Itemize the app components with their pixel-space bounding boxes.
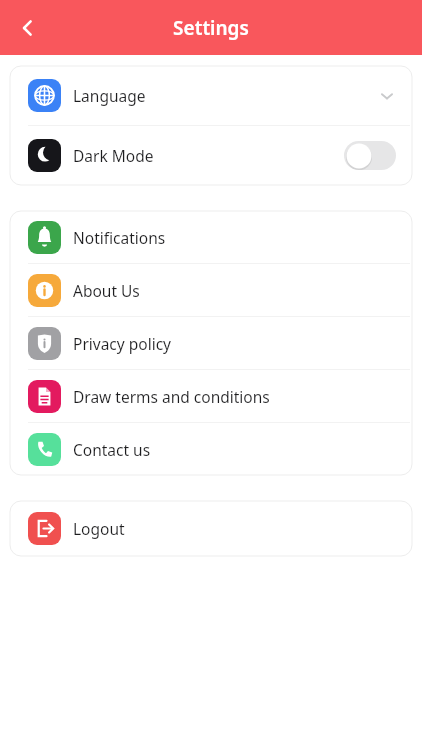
staticText: Logout (73, 518, 125, 539)
staticText: Settings (173, 15, 249, 41)
button[interactable]: Dark Mode, off (344, 141, 396, 170)
staticText: About Us (73, 280, 140, 301)
button[interactable]: Dark Mode (10, 126, 412, 185)
button[interactable]: Language (10, 66, 412, 125)
staticText: Draw terms and conditions (73, 386, 270, 407)
staticText: Dark Mode (73, 145, 154, 166)
button[interactable]: About Us (10, 264, 412, 316)
staticText: Contact us (73, 439, 151, 460)
button[interactable]: Privacy policy (10, 317, 412, 369)
button[interactable]: Logout (10, 501, 412, 556)
staticText: Notifications (73, 227, 166, 248)
staticText: Language (73, 85, 146, 106)
button[interactable]: Notifications (10, 211, 412, 263)
button[interactable]: Contact us (10, 423, 412, 475)
button[interactable]: Draw terms and conditions (10, 370, 412, 422)
staticText: Privacy policy (73, 333, 171, 354)
button[interactable]: Back (6, 6, 50, 50)
